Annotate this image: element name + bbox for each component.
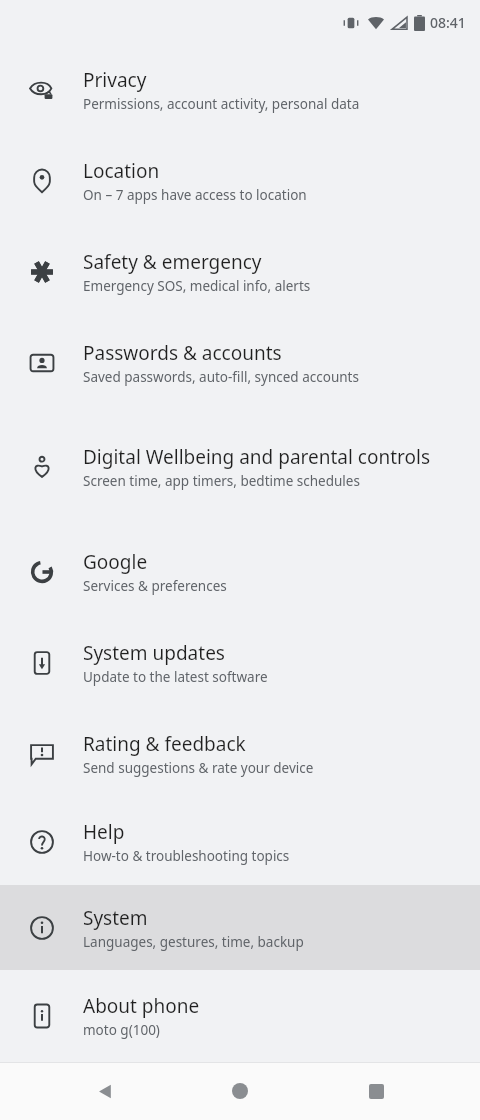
staticText: Google (83, 549, 148, 575)
staticText: Passwords & accounts (83, 340, 282, 366)
button[interactable]: Privacy (0, 44, 480, 135)
staticText: Languages, gestures, time, backup (83, 933, 304, 951)
button[interactable]: Recent apps (345, 1062, 407, 1120)
staticText: On – 7 apps have access to location (83, 186, 307, 204)
button[interactable]: Digital Wellbeing and parental controls (0, 408, 480, 526)
button[interactable]: Home (209, 1062, 271, 1120)
staticText: How-to & troubleshooting topics (83, 847, 290, 865)
staticText: About phone (83, 993, 200, 1019)
button[interactable]: Back (74, 1062, 136, 1120)
staticText: System (83, 905, 148, 931)
button[interactable]: Google (0, 526, 480, 617)
button[interactable]: Rating & feedback (0, 708, 480, 799)
staticText: Emergency SOS, medical info, alerts (83, 277, 311, 295)
staticText: Screen time, app timers, bedtime schedul… (83, 472, 360, 490)
button[interactable]: Help (0, 799, 480, 885)
staticText: Permissions, account activity, personal … (83, 95, 360, 113)
staticText: moto g(100) (83, 1021, 160, 1039)
staticText: System updates (83, 640, 225, 666)
button[interactable]: Safety & emergency (0, 226, 480, 317)
button[interactable]: System updates (0, 617, 480, 708)
button[interactable]: Passwords & accounts (0, 317, 480, 408)
staticText: 08:41 (430, 13, 466, 32)
staticText: Update to the latest software (83, 668, 268, 686)
staticText: Safety & emergency (83, 249, 262, 275)
staticText: Digital Wellbeing and parental controls (83, 444, 431, 470)
staticText: Rating & feedback (83, 731, 246, 757)
staticText: Saved passwords, auto-fill, synced accou… (83, 368, 359, 386)
button[interactable]: About phone (0, 970, 480, 1061)
staticText: Privacy (83, 67, 147, 93)
staticText: Send suggestions & rate your device (83, 759, 314, 777)
button[interactable]: Location (0, 135, 480, 226)
staticText: Location (83, 158, 160, 184)
staticText: Help (83, 819, 125, 845)
button[interactable]: System (0, 885, 480, 970)
staticText: Services & preferences (83, 577, 227, 595)
